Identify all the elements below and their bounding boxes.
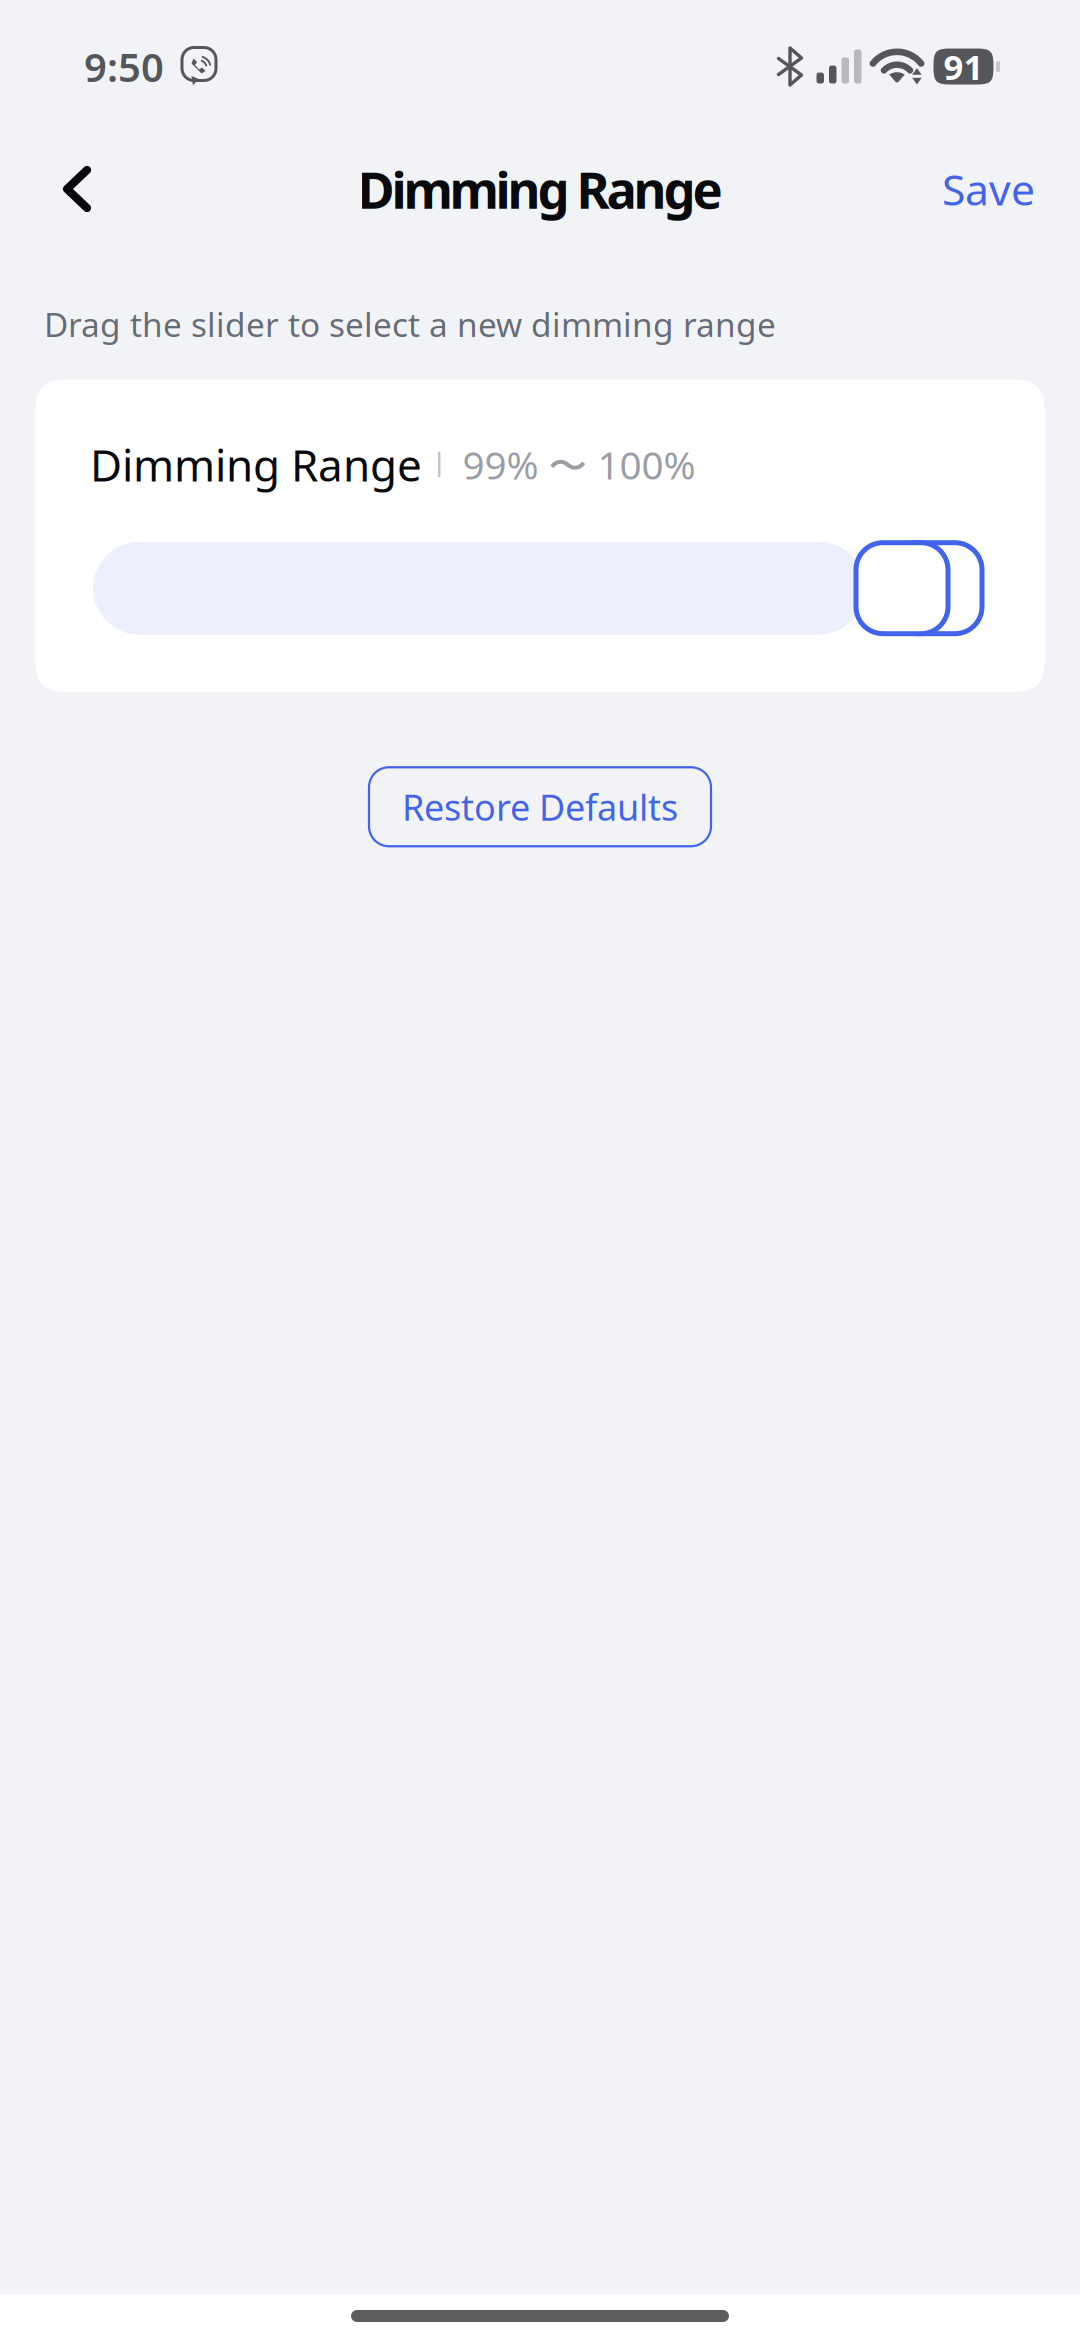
staticText: 91 [943, 43, 983, 89]
staticText: Save [942, 161, 1035, 217]
button[interactable]: Restore Defaults [369, 767, 711, 846]
staticText: Dimming Range [90, 435, 422, 494]
button[interactable]: Minimum brightness 99% [856, 543, 948, 634]
button[interactable]: Save [942, 146, 1035, 232]
button[interactable]: Maximum brightness 100% [890, 543, 982, 634]
staticText: Dimming Range [357, 155, 722, 223]
staticText: 9:50 [84, 40, 164, 93]
staticText: 99% 〜 100% [462, 439, 695, 490]
button[interactable]: Back [34, 146, 120, 232]
staticText: Restore Defaults [402, 783, 678, 831]
staticText: Drag the slider to select a new dimming … [44, 302, 776, 346]
